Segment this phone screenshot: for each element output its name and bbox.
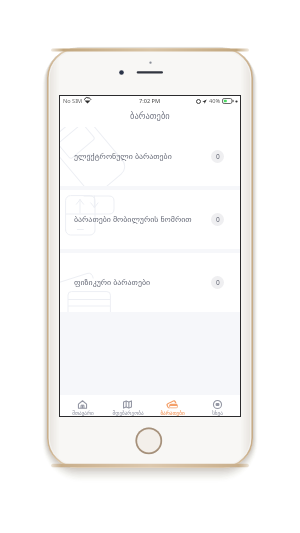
staticText: ფიზიკური ბარათები xyxy=(74,277,151,288)
staticText: 0 xyxy=(216,278,220,287)
staticText: No SIM xyxy=(63,97,83,105)
staticText: სხვა xyxy=(212,410,223,416)
staticText: ბარათები xyxy=(130,111,170,121)
button[interactable]: სხვა xyxy=(195,395,240,416)
staticText: 7:02 PM xyxy=(139,97,161,105)
staticText: 40% xyxy=(209,97,221,105)
button[interactable]: ბარათები მობილურის ნომრით xyxy=(60,190,240,249)
staticText: მდებარეობა xyxy=(112,410,144,416)
button[interactable]: მდებარეობა xyxy=(105,395,150,416)
staticText: მთავარი xyxy=(72,410,94,416)
staticText: ბარათები xyxy=(160,410,185,416)
button[interactable]: ელექტრონული ბარათები xyxy=(60,127,240,186)
button[interactable]: მთავარი xyxy=(60,395,105,416)
button[interactable]: ბარათები xyxy=(150,395,195,416)
staticText: 0 xyxy=(216,152,220,161)
button[interactable]: ფიზიკური ბარათები xyxy=(60,253,240,312)
staticText: ბარათები მობილურის ნომრით xyxy=(74,214,192,225)
staticText: 0 xyxy=(216,215,220,224)
staticText: ელექტრონული ბარათები xyxy=(74,151,172,162)
